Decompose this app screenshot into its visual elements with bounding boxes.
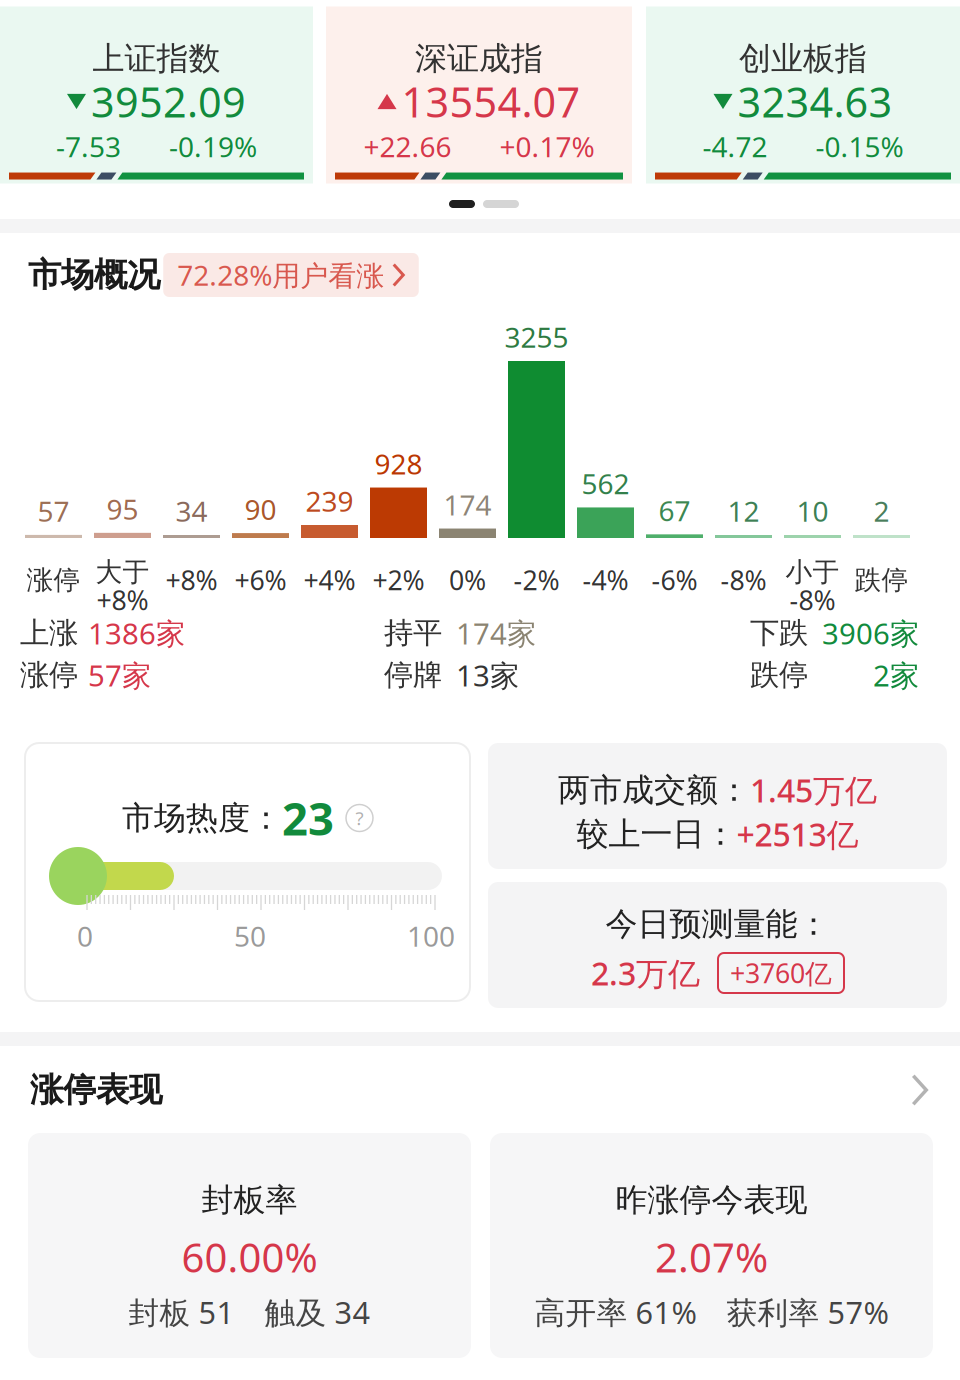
staticText: -6% — [651, 562, 697, 598]
staticText: ? — [355, 806, 363, 830]
staticText: 触及 34 — [264, 1292, 370, 1332]
staticText: 562 — [581, 465, 629, 502]
staticText: 13554.07 — [401, 74, 580, 129]
staticText: 3952.09 — [91, 74, 246, 129]
staticText: +8% — [96, 582, 148, 618]
staticText: 23 — [282, 788, 334, 848]
staticText: 3234.63 — [737, 74, 892, 129]
staticText: 深证成指 — [415, 39, 543, 78]
staticText: 928 — [374, 445, 422, 482]
staticText: 封板 51 — [128, 1292, 234, 1332]
staticText: 两市成交额： — [558, 770, 750, 810]
staticText: -0.15% — [815, 128, 903, 165]
staticText: +2% — [372, 562, 424, 598]
staticText: 创业板指 — [739, 39, 867, 78]
staticText: 涨停 — [20, 657, 78, 693]
staticText: 封板率 — [201, 1180, 297, 1220]
staticText: 57 — [37, 492, 69, 529]
button[interactable]: 72.28%用户看涨 — [163, 253, 419, 297]
button[interactable]: 深证成指 — [326, 6, 632, 183]
staticText: +3760亿 — [730, 955, 832, 991]
staticText: 10 — [796, 492, 828, 530]
staticText: -0.19% — [169, 128, 257, 165]
staticText: +0.17% — [499, 128, 594, 165]
staticText: +6% — [234, 562, 286, 598]
button[interactable]: 涨停表现 — [0, 1062, 960, 1118]
staticText: 60.00% — [181, 1230, 317, 1283]
staticText: 3906家 — [822, 613, 919, 652]
staticText: 95 — [106, 490, 138, 527]
staticText: 100 — [407, 917, 455, 955]
staticText: 上涨 — [20, 615, 78, 651]
staticText: +4% — [303, 562, 355, 598]
staticText: 停牌 — [384, 657, 442, 693]
staticText: 市场概况 — [28, 254, 160, 295]
staticText: 涨停表现 — [30, 1069, 162, 1110]
staticText: 174 — [443, 486, 491, 523]
staticText: 1386家 — [88, 613, 185, 652]
staticText: +22.66 — [363, 128, 451, 165]
staticText: 较上一日： — [576, 814, 736, 854]
staticText: 小于 — [785, 556, 839, 588]
staticText: 50 — [234, 917, 266, 955]
staticText: -8% — [720, 562, 766, 598]
staticText: 2 — [873, 492, 889, 530]
staticText: 1.45万亿 — [750, 769, 877, 811]
staticText: 239 — [305, 482, 353, 520]
staticText: 市场热度： — [122, 798, 282, 838]
staticText: 0% — [449, 562, 486, 598]
staticText: +2513亿 — [736, 813, 858, 855]
staticText: +8% — [165, 562, 217, 598]
staticText: 2.3万亿 — [591, 952, 700, 994]
staticText: 上证指数 — [92, 39, 220, 78]
staticText: 3255 — [504, 318, 568, 356]
staticText: 获利率 57% — [726, 1292, 888, 1332]
button[interactable]: 上证指数 — [0, 6, 313, 183]
staticText: 高开率 61% — [534, 1292, 696, 1332]
staticText: 67 — [658, 492, 690, 529]
staticText: 大于 — [95, 556, 149, 588]
staticText: 持平 — [384, 615, 442, 651]
staticText: 0 — [77, 917, 93, 955]
staticText: -4% — [582, 562, 628, 598]
staticText: -2% — [513, 562, 559, 598]
staticText: 174家 — [456, 613, 536, 652]
staticText: 2家 — [873, 655, 919, 694]
staticText: -7.53 — [56, 128, 121, 165]
staticText: 2.07% — [655, 1230, 768, 1283]
staticText: 13家 — [456, 655, 519, 694]
staticText: 12 — [727, 492, 759, 530]
staticText: 34 — [175, 492, 207, 530]
staticText: -8% — [789, 582, 835, 618]
staticText: 涨停 — [26, 564, 80, 596]
staticText: 57家 — [88, 655, 151, 694]
button[interactable]: 创业板指 — [646, 6, 960, 183]
staticText: 72.28%用户看涨 — [177, 256, 384, 294]
staticText: 跌停 — [854, 564, 908, 596]
staticText: 跌停 — [750, 657, 808, 693]
staticText: 今日预测量能： — [605, 904, 829, 944]
staticText: -4.72 — [702, 128, 767, 165]
staticText: 下跌 — [750, 615, 808, 651]
staticText: 昨涨停今表现 — [615, 1180, 807, 1220]
staticText: 90 — [244, 490, 276, 528]
